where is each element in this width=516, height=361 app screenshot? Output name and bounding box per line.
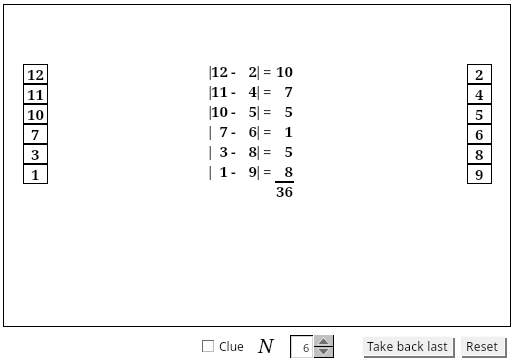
button[interactable]: Clue: [202, 336, 244, 356]
staticText: 3: [31, 144, 40, 164]
staticText: |: [206, 81, 215, 101]
staticText: |: [254, 161, 263, 181]
staticText: 2: [475, 64, 484, 84]
button[interactable]: 1: [23, 164, 48, 184]
staticText: 5: [253, 101, 293, 121]
staticText: =: [263, 101, 272, 121]
staticText: 11: [188, 81, 228, 101]
staticText: 12: [188, 61, 228, 81]
staticText: -: [231, 81, 236, 101]
staticText: 1: [188, 161, 228, 181]
staticText: 6: [217, 121, 257, 141]
staticText: 6: [303, 340, 310, 355]
staticText: 5: [475, 104, 484, 124]
staticText: |: [254, 61, 263, 81]
staticText: -: [231, 61, 236, 81]
staticText: 8: [217, 141, 257, 161]
staticText: -: [231, 161, 236, 181]
staticText: 7: [31, 124, 40, 144]
staticText: |: [206, 141, 215, 161]
button[interactable]: Reset: [460, 336, 505, 356]
staticText: =: [263, 61, 272, 81]
staticText: =: [263, 121, 272, 141]
button[interactable]: 10: [23, 104, 48, 124]
staticText: |: [254, 81, 263, 101]
staticText: 10: [188, 101, 228, 121]
staticText: |: [206, 61, 215, 81]
staticText: Clue: [219, 338, 244, 354]
button[interactable]: Decrease N: [314, 347, 333, 357]
staticText: 7: [253, 81, 293, 101]
staticText: |: [206, 101, 215, 121]
staticText: 5: [253, 141, 293, 161]
staticText: 11: [27, 84, 44, 104]
button[interactable]: 12: [23, 64, 48, 84]
staticText: 10: [27, 104, 44, 124]
staticText: |: [206, 161, 215, 181]
button[interactable]: 8: [467, 144, 492, 164]
button[interactable]: 5: [467, 104, 492, 124]
button[interactable]: 11: [23, 84, 48, 104]
staticText: =: [263, 81, 272, 101]
staticText: Reset: [466, 338, 499, 354]
staticText: 3: [188, 141, 228, 161]
staticText: 1: [253, 121, 293, 141]
button[interactable]: Take back last: [362, 336, 453, 356]
staticText: 9: [217, 161, 257, 181]
staticText: 8: [475, 144, 484, 164]
staticText: Take back last: [367, 338, 448, 354]
button[interactable]: 9: [467, 164, 492, 184]
staticText: 4: [217, 81, 257, 101]
staticText: 36: [253, 181, 293, 201]
staticText: 5: [217, 101, 257, 121]
staticText: |: [206, 121, 215, 141]
button[interactable]: 6: [467, 124, 492, 144]
button[interactable]: Number of pairs: [292, 337, 312, 357]
button[interactable]: Increase N: [314, 335, 333, 346]
staticText: 8: [253, 161, 293, 181]
staticText: 6: [475, 124, 484, 144]
staticText: 12: [27, 64, 44, 84]
staticText: 7: [188, 121, 228, 141]
staticText: =: [263, 161, 272, 181]
staticText: |: [254, 141, 263, 161]
staticText: N: [258, 332, 274, 359]
staticText: 1: [31, 164, 40, 184]
button[interactable]: 7: [23, 124, 48, 144]
staticText: -: [231, 101, 236, 121]
staticText: |: [254, 101, 263, 121]
button[interactable]: 2: [467, 64, 492, 84]
staticText: 9: [475, 164, 484, 184]
staticText: -: [231, 141, 236, 161]
staticText: 10: [253, 61, 293, 81]
button[interactable]: 4: [467, 84, 492, 104]
staticText: =: [263, 141, 272, 161]
staticText: -: [231, 121, 236, 141]
staticText: |: [254, 121, 263, 141]
button[interactable]: 3: [23, 144, 48, 164]
staticText: 4: [475, 84, 484, 104]
staticText: 2: [217, 61, 257, 81]
